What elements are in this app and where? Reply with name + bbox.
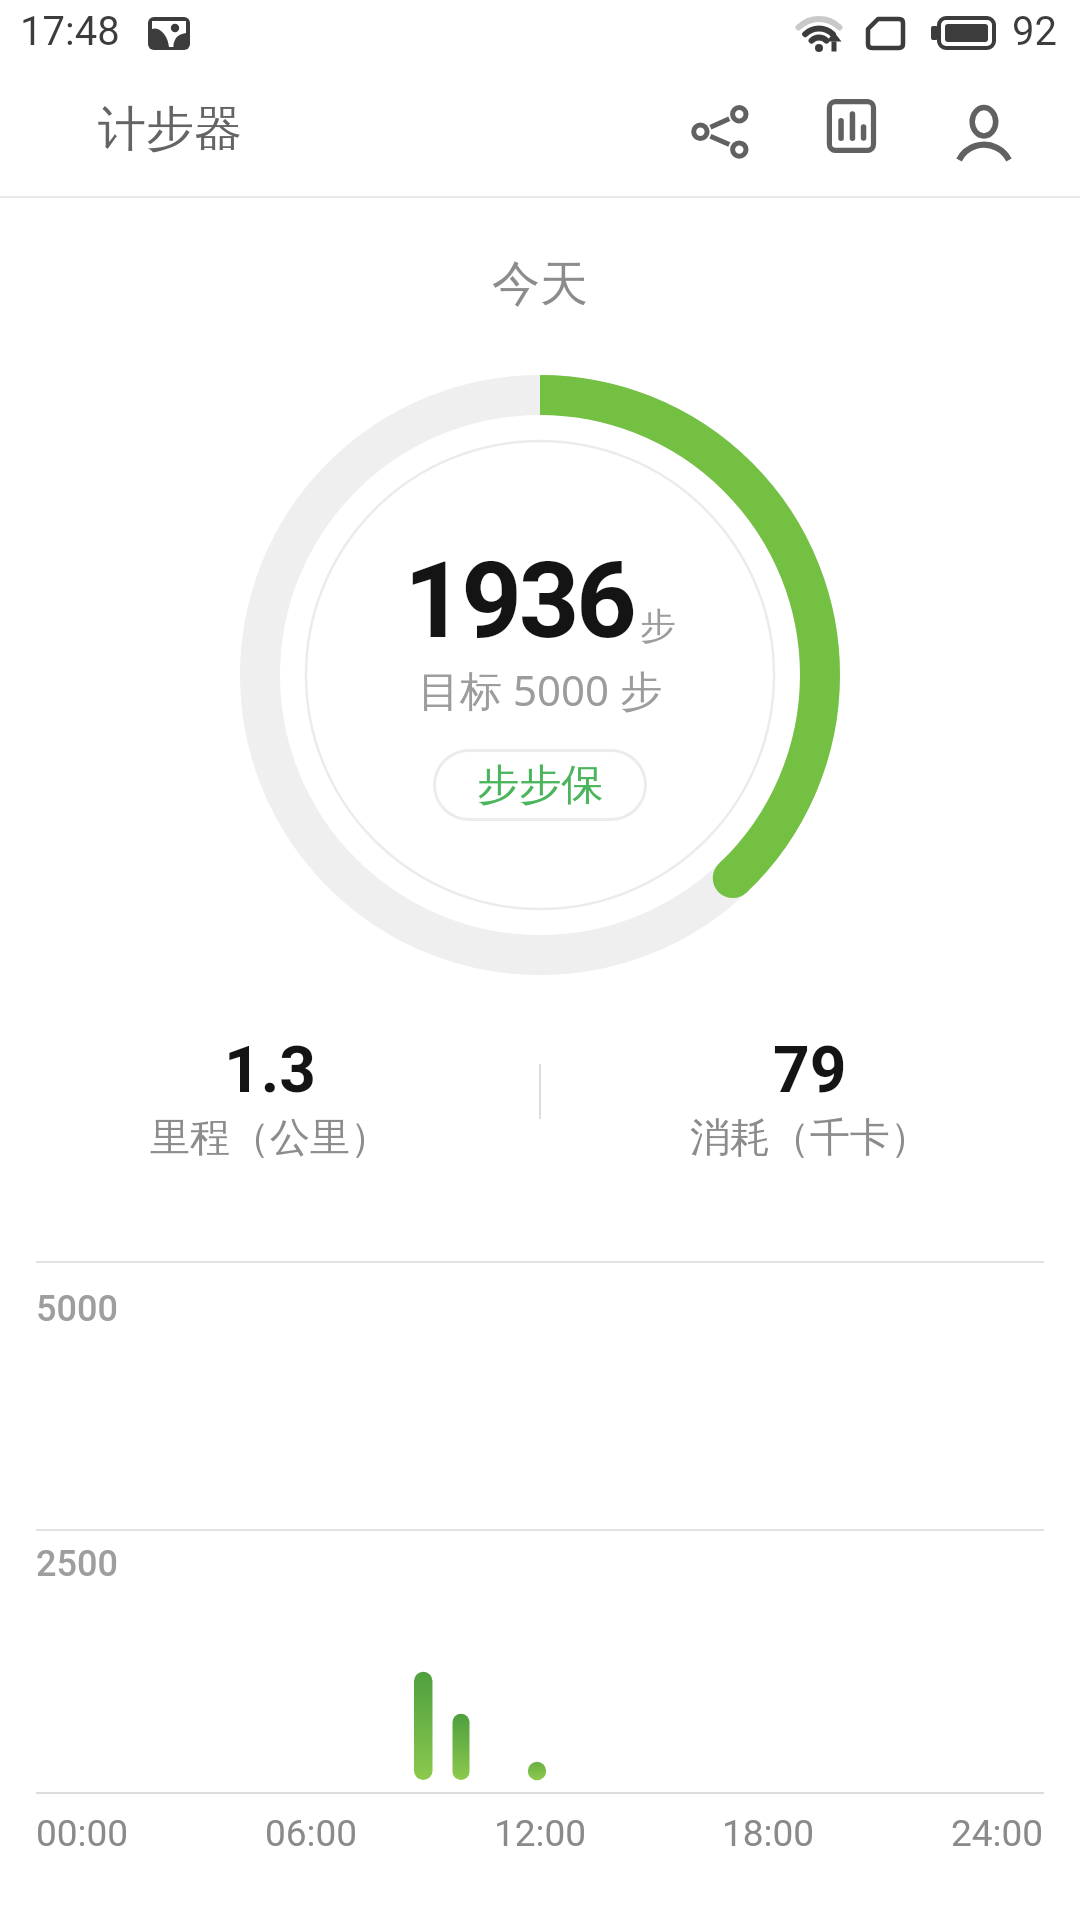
staticText: 92 [1012,8,1057,55]
button[interactable] [956,97,1012,165]
staticText: 12:00 [494,1812,587,1855]
button[interactable] [694,97,750,165]
button[interactable]: 步步保 [433,749,647,821]
staticText: 里程（公里） [150,1112,390,1162]
staticText: 18:00 [722,1812,815,1855]
staticText: 00:00 [36,1812,129,1855]
staticText: 1.3 [224,1033,317,1108]
staticText: 06:00 [265,1812,358,1855]
staticText: 计步器 [98,99,242,159]
staticText: 24:00 [951,1812,1044,1855]
staticText: 17:48 [20,8,120,55]
staticText: 79 [773,1033,847,1108]
button[interactable] [824,97,880,165]
staticText: 今天 [492,254,588,314]
staticText: 目标 5000 步 [418,661,662,718]
staticText: 步 [640,603,676,648]
staticText: 2500 [36,1543,118,1585]
staticText: 步步保 [477,759,603,812]
staticText: 消耗（千卡） [690,1112,930,1162]
staticText: 1936 [404,539,634,663]
staticText: 5000 [36,1288,118,1330]
